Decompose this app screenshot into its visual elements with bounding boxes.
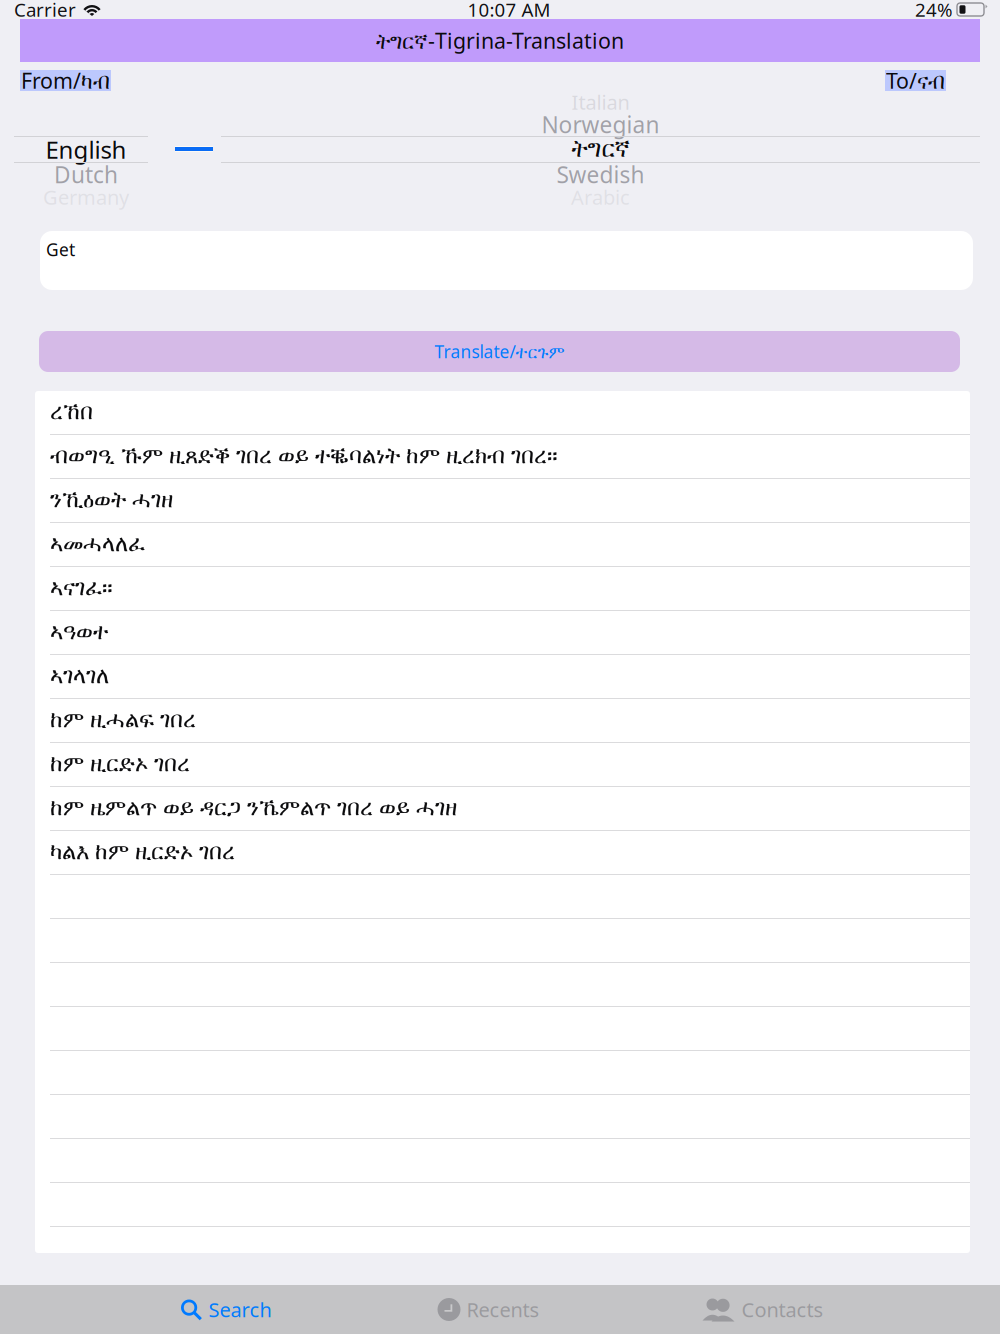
staticText: Arabic	[571, 184, 630, 210]
button[interactable]	[35, 1095, 970, 1139]
staticText: ኣገላገለ	[50, 665, 109, 687]
button[interactable]: ንኺዕወት ሓገዘ	[35, 479, 970, 523]
button[interactable]	[35, 1007, 970, 1051]
button[interactable]: Search	[179, 1285, 271, 1334]
button[interactable]	[35, 1183, 970, 1227]
button[interactable]: ከም ዜምልጥ ወይ ዳርጋ ንኼምልጥ ገበረ ወይ ሓገዘ	[35, 787, 970, 831]
staticText: ከም ዚርድኦ ገበረ	[50, 753, 190, 775]
button[interactable]: Translate/ተርጉም	[39, 331, 960, 372]
staticText: Translate/ተርጉም	[434, 340, 564, 363]
staticText: Carrier	[14, 0, 76, 22]
button[interactable]: ኣዓወተ	[35, 611, 970, 655]
staticText: ካልእ ከም ዚርድኦ ገበረ	[50, 841, 235, 863]
button[interactable]: ካልእ ከም ዚርድኦ ገበረ	[35, 831, 970, 875]
staticText: ንኺዕወት ሓገዘ	[50, 489, 173, 511]
staticText: ከም ዜምልጥ ወይ ዳርጋ ንኼምልጥ ገበረ ወይ ሓገዘ	[50, 797, 457, 819]
staticText: ብወግዒ ኹም ዚጸድቕ ገበረ ወይ ተቘባልነት ከም ዚረክብ ገበረ።	[50, 445, 558, 467]
button[interactable]: ረኸበ	[35, 391, 970, 435]
button[interactable]: ከም ዚርድኦ ገበረ	[35, 743, 970, 787]
button[interactable]	[35, 1051, 970, 1095]
staticText: Get	[46, 238, 75, 261]
staticText: Norwegian	[541, 109, 659, 139]
button[interactable]	[35, 1139, 970, 1183]
button[interactable]: Recents	[437, 1285, 539, 1334]
button[interactable]	[35, 875, 970, 919]
staticText: ኣዓወተ	[50, 621, 108, 643]
staticText: ትግርኛ	[571, 138, 629, 161]
staticText: Recents	[466, 1296, 539, 1323]
button[interactable]: Contacts	[701, 1285, 823, 1334]
staticText: ኣናገፈ።	[50, 577, 113, 599]
staticText: Germany	[43, 184, 129, 210]
staticText: To/ናብ	[886, 66, 945, 95]
staticText: Italian	[571, 89, 629, 115]
staticText: From/ካብ	[21, 66, 110, 95]
button[interactable]: ኣናገፈ።	[35, 567, 970, 611]
staticText: ትግርኛ-Tigrina-Translation	[376, 26, 624, 55]
staticText: Swedish	[556, 159, 644, 189]
staticText: 10:07 AM	[467, 0, 550, 22]
button[interactable]: ኣመሓላለፈ	[35, 523, 970, 567]
staticText: English	[45, 134, 126, 165]
button[interactable]	[35, 919, 970, 963]
button[interactable]: ኣገላገለ	[35, 655, 970, 699]
staticText: Search	[208, 1296, 271, 1323]
staticText: ከም ዚሓልፍ ገበረ	[50, 709, 196, 731]
button[interactable]	[35, 1227, 970, 1271]
staticText: Dutch	[54, 159, 118, 189]
button[interactable]: ብወግዒ ኹም ዚጸድቕ ገበረ ወይ ተቘባልነት ከም ዚረክብ ገበረ።	[35, 435, 970, 479]
staticText: 24%	[915, 0, 953, 22]
staticText: ኣመሓላለፈ	[50, 533, 145, 555]
button[interactable]	[35, 963, 970, 1007]
staticText: Contacts	[741, 1296, 823, 1323]
staticText: ረኸበ	[50, 401, 93, 423]
button[interactable]: ከም ዚሓልፍ ገበረ	[35, 699, 970, 743]
